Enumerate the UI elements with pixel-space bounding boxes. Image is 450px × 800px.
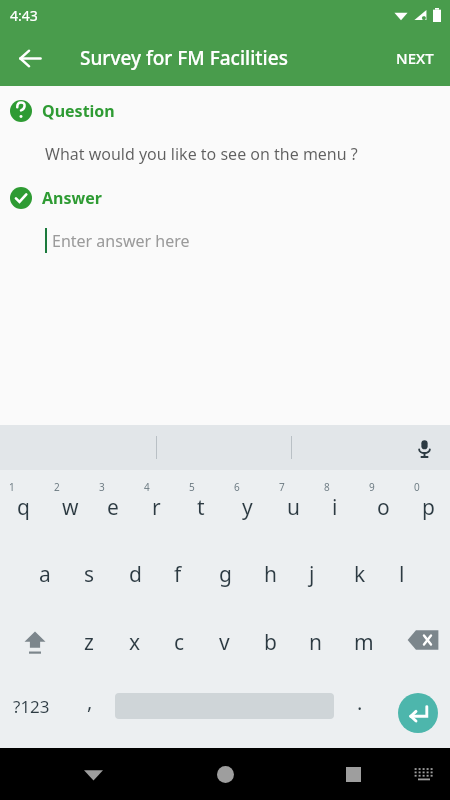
- staticText: r: [152, 493, 161, 522]
- staticText: 4: [144, 480, 150, 494]
- staticText: w: [62, 493, 79, 522]
- button[interactable]: Question: [0, 100, 450, 122]
- staticText: q: [17, 493, 30, 522]
- staticText: 4:43: [10, 6, 38, 25]
- button[interactable]: [293, 606, 338, 674]
- button[interactable]: .: [338, 674, 382, 738]
- button[interactable]: [158, 606, 203, 674]
- button[interactable]: Answer: [0, 187, 450, 209]
- button[interactable]: [23, 538, 68, 606]
- button[interactable]: Switch keyboard: [404, 748, 444, 800]
- button[interactable]: [383, 538, 428, 606]
- staticText: ,: [87, 688, 93, 715]
- staticText: j: [309, 560, 315, 589]
- staticText: 1: [9, 480, 15, 494]
- staticText: v: [219, 628, 230, 657]
- button[interactable]: Back: [8, 36, 52, 80]
- button[interactable]: [405, 470, 450, 538]
- button[interactable]: [360, 470, 405, 538]
- button[interactable]: Voice input: [407, 431, 441, 465]
- staticText: f: [174, 560, 182, 589]
- button[interactable]: [248, 606, 293, 674]
- staticText: 3: [99, 480, 105, 494]
- button[interactable]: [203, 538, 248, 606]
- button[interactable]: [293, 538, 338, 606]
- staticText: t: [197, 493, 205, 522]
- staticText: What would you like to see on the menu ?: [45, 143, 358, 165]
- staticText: Enter answer here: [52, 230, 190, 252]
- staticText: 7: [279, 480, 285, 494]
- staticText: h: [264, 560, 277, 589]
- staticText: x: [129, 628, 141, 657]
- staticText: a: [39, 560, 51, 589]
- staticText: l: [399, 560, 405, 589]
- staticText: g: [219, 560, 232, 589]
- button[interactable]: [338, 606, 383, 674]
- button[interactable]: [248, 538, 293, 606]
- staticText: Answer: [42, 187, 102, 209]
- staticText: Survey for FM Facilities: [80, 45, 288, 71]
- staticText: 9: [369, 480, 375, 494]
- button[interactable]: [113, 606, 158, 674]
- staticText: k: [354, 560, 366, 589]
- staticText: i: [332, 493, 338, 522]
- button[interactable]: Enter: [390, 685, 446, 741]
- staticText: p: [422, 493, 435, 522]
- button[interactable]: [225, 470, 270, 538]
- staticText: 8: [324, 480, 330, 494]
- button[interactable]: Recents: [331, 748, 375, 800]
- staticText: o: [377, 493, 390, 522]
- button[interactable]: Back: [71, 748, 115, 800]
- staticText: d: [129, 560, 142, 589]
- button[interactable]: [90, 470, 135, 538]
- staticText: z: [84, 628, 94, 657]
- staticText: c: [174, 628, 185, 657]
- staticText: e: [107, 493, 119, 522]
- staticText: y: [242, 493, 253, 522]
- button[interactable]: [0, 470, 45, 538]
- staticText: n: [309, 628, 322, 657]
- staticText: 6: [234, 480, 240, 494]
- button[interactable]: [135, 470, 180, 538]
- button[interactable]: [113, 538, 158, 606]
- staticText: u: [287, 493, 300, 522]
- button[interactable]: [68, 606, 113, 674]
- button[interactable]: ,: [68, 674, 112, 738]
- button[interactable]: [338, 538, 383, 606]
- button[interactable]: [180, 470, 225, 538]
- staticText: ?123: [13, 695, 50, 718]
- staticText: 0: [414, 480, 420, 494]
- staticText: s: [84, 560, 95, 589]
- button[interactable]: [270, 470, 315, 538]
- button[interactable]: [68, 538, 113, 606]
- button[interactable]: Shift: [4, 606, 66, 674]
- staticText: m: [354, 628, 374, 657]
- staticText: b: [264, 628, 277, 657]
- button[interactable]: [45, 470, 90, 538]
- staticText: NEXT: [396, 48, 434, 68]
- button[interactable]: Backspace: [396, 606, 450, 674]
- button[interactable]: NEXT: [386, 38, 444, 78]
- staticText: Question: [42, 100, 115, 122]
- staticText: .: [357, 689, 363, 716]
- button[interactable]: [158, 538, 203, 606]
- button[interactable]: [315, 470, 360, 538]
- button[interactable]: ?123: [0, 674, 62, 738]
- button[interactable]: Enter answer here: [0, 228, 450, 253]
- button[interactable]: Home: [203, 748, 247, 800]
- button[interactable]: [203, 606, 248, 674]
- staticText: 2: [54, 480, 60, 494]
- staticText: 5: [189, 480, 195, 494]
